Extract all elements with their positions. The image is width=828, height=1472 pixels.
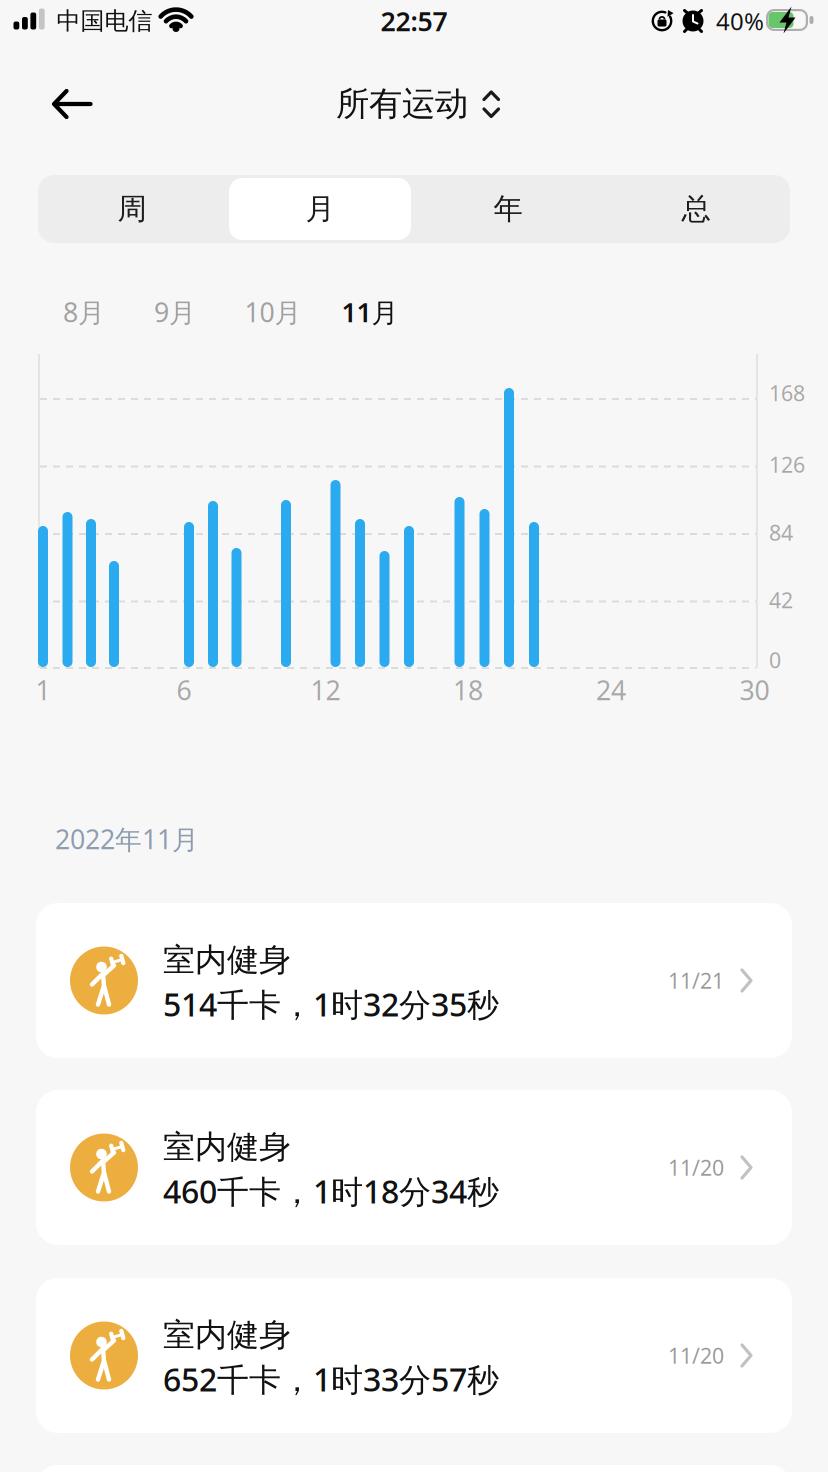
button[interactable]: 室内健身 [36, 1278, 792, 1433]
staticText: 11/20 [668, 1341, 724, 1370]
staticText: 室内健身 [163, 940, 291, 980]
staticText: 42 [769, 586, 793, 614]
button[interactable]: 月 [226, 175, 414, 243]
staticText: 所有运动 [336, 83, 468, 124]
staticText: 11/20 [668, 1153, 724, 1182]
staticText: 168 [769, 379, 805, 407]
button[interactable]: 所有运动 [326, 76, 506, 132]
button[interactable]: 室内健身 [36, 903, 792, 1058]
staticText: 室内健身 [163, 1315, 291, 1355]
staticText: 室内健身 [163, 1127, 291, 1167]
button[interactable]: 室内健身 [36, 1090, 792, 1245]
staticText: 514千卡，1时32分35秒 [163, 983, 499, 1025]
staticText: 6 [176, 672, 191, 708]
staticText: 中国电信 [56, 6, 152, 36]
staticText: 11月 [341, 294, 398, 330]
staticText: 周 [117, 191, 146, 227]
button[interactable]: 9月 [154, 294, 196, 330]
staticText: 9月 [154, 294, 196, 330]
staticText: 40% [716, 5, 764, 37]
staticText: 22:57 [380, 3, 447, 39]
staticText: 460千卡，1时18分34秒 [163, 1170, 499, 1212]
staticText: 1 [35, 672, 50, 708]
button[interactable]: 周 [38, 175, 226, 243]
staticText: 30 [739, 672, 769, 708]
staticText: 126 [769, 450, 805, 479]
staticText: 8月 [63, 294, 105, 330]
staticText: 0 [769, 646, 781, 674]
staticText: 84 [769, 518, 793, 547]
button[interactable]: 11月 [341, 294, 398, 330]
staticText: 10月 [244, 294, 301, 330]
staticText: 年 [493, 191, 522, 227]
staticText: 11/21 [668, 966, 724, 995]
staticText: 2022年11月 [55, 821, 199, 857]
staticText: 月 [305, 191, 334, 227]
staticText: 652千卡，1时33分57秒 [163, 1358, 499, 1400]
button[interactable]: 10月 [244, 294, 301, 330]
staticText: 24 [596, 672, 626, 708]
button[interactable]: 8月 [63, 294, 105, 330]
button[interactable]: 年 [414, 175, 602, 243]
staticText: 12 [310, 672, 340, 708]
button[interactable]: 总 [602, 175, 790, 243]
staticText: 18 [453, 672, 483, 708]
button[interactable] [40, 72, 104, 136]
staticText: 总 [681, 191, 710, 227]
